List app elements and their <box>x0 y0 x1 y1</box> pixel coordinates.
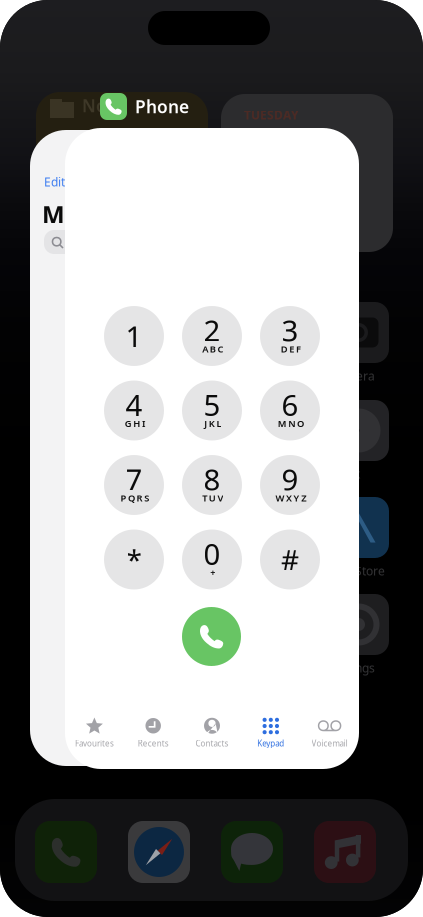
button[interactable]: 7 <box>104 455 164 515</box>
staticText: DEF <box>281 343 301 355</box>
staticText: Settings <box>330 660 375 676</box>
staticText: GHI <box>125 417 145 430</box>
staticText: Camera <box>330 368 375 384</box>
staticText: Keypad <box>257 738 284 749</box>
staticText: Clock <box>330 466 360 482</box>
staticText: M <box>42 198 65 230</box>
button[interactable]: Voicemail <box>300 712 359 752</box>
staticText: 4 <box>125 385 142 424</box>
button[interactable]: # <box>260 529 320 589</box>
staticText: 5 <box>203 385 220 424</box>
staticText: 2 <box>203 310 220 349</box>
staticText: 3 <box>281 310 298 349</box>
staticText: Contacts <box>195 738 228 749</box>
button[interactable]: 1 <box>104 306 164 366</box>
button[interactable]: 5 <box>182 380 242 440</box>
button[interactable]: 2 <box>182 306 242 366</box>
staticText: App Store <box>330 563 385 579</box>
staticText: Recents <box>138 738 169 749</box>
staticText: PQRS <box>120 492 149 504</box>
staticText: # <box>281 541 299 578</box>
staticText: Edit <box>44 174 65 190</box>
button[interactable]: Contacts <box>183 712 241 752</box>
button[interactable]: 6 <box>260 380 320 440</box>
staticText: * <box>126 541 141 578</box>
button[interactable]: Favourites <box>65 712 124 752</box>
staticText: 7 <box>125 459 142 498</box>
staticText: 0 <box>203 534 220 573</box>
staticText: JKL <box>204 417 221 430</box>
staticText: 9 <box>281 459 298 498</box>
staticText: TUV <box>202 492 223 504</box>
button[interactable]: * <box>104 529 164 589</box>
staticText: ABC <box>202 343 223 355</box>
button[interactable]: 3 <box>260 306 320 366</box>
staticText: WXYZ <box>275 492 306 504</box>
staticText: MNO <box>278 417 304 430</box>
staticText: Voicemail <box>312 738 348 749</box>
staticText: 1 <box>125 316 142 355</box>
button[interactable]: 4 <box>104 380 164 440</box>
staticText: Favourites <box>75 738 114 749</box>
staticText: Phone <box>135 95 189 118</box>
button[interactable]: Keypad <box>241 712 300 752</box>
staticText: + <box>210 566 215 579</box>
button[interactable]: 8 <box>182 455 242 515</box>
button[interactable]: Call <box>182 607 241 666</box>
button[interactable]: Recents <box>124 712 183 752</box>
staticText: No <box>82 94 107 117</box>
button[interactable]: 9 <box>260 455 320 515</box>
staticText: TUESDAY <box>244 107 299 123</box>
staticText: 8 <box>203 459 220 498</box>
button[interactable]: 0 <box>182 529 242 589</box>
staticText: 6 <box>281 385 298 424</box>
